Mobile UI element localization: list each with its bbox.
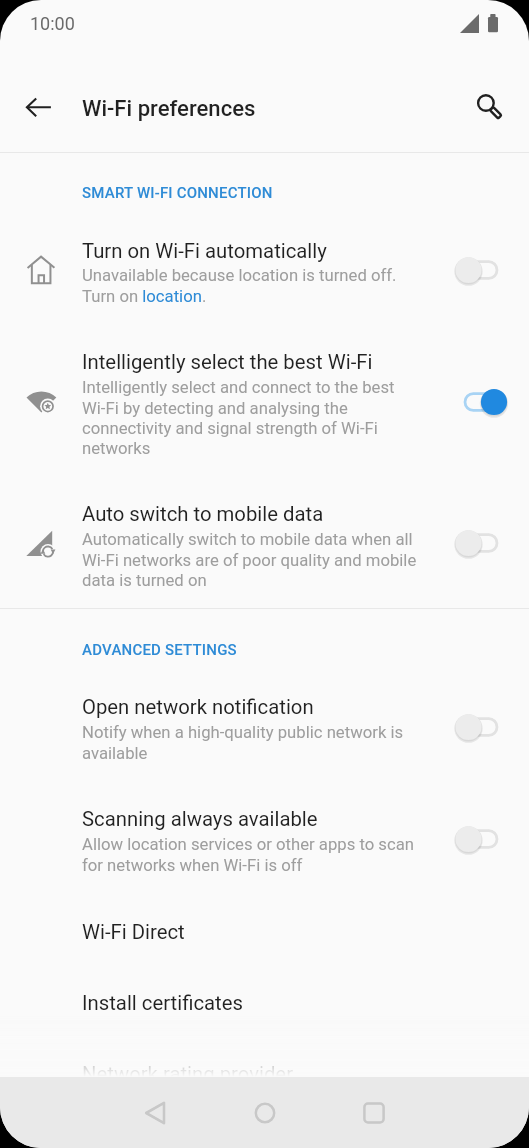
button[interactable]: Toggle off <box>451 513 511 573</box>
button[interactable]: Toggle off <box>451 697 511 757</box>
button[interactable] <box>0 979 529 1027</box>
staticText: Network rating provider <box>82 1062 294 1086</box>
staticText: Intelligently select the best Wi-Fi <box>82 350 373 374</box>
button[interactable]: Back <box>130 1087 181 1138</box>
button[interactable] <box>0 490 529 601</box>
staticText: Open network notification <box>82 695 314 719</box>
staticText: Auto switch to mobile data <box>82 502 324 526</box>
staticText: Wi-Fi preferences <box>82 95 256 121</box>
button[interactable]: Back <box>14 82 64 132</box>
staticText: Turn on Wi-Fi automatically <box>82 239 327 263</box>
button[interactable] <box>0 1050 529 1098</box>
button[interactable] <box>0 908 529 956</box>
button[interactable]: Home <box>239 1087 290 1138</box>
button[interactable] <box>0 795 529 887</box>
button[interactable]: Toggle on <box>451 372 511 432</box>
staticText: Intelligently select and connect to the … <box>82 378 395 458</box>
staticText: Unavailable because location is turned o… <box>82 266 397 306</box>
button[interactable] <box>0 683 529 775</box>
button[interactable]: Toggle off <box>451 809 511 869</box>
button[interactable]: Search <box>461 78 511 128</box>
staticText: Wi-Fi Direct <box>82 920 185 944</box>
staticText: Automatically switch to mobile data when… <box>82 530 417 590</box>
button[interactable]: Toggle off <box>451 240 511 300</box>
staticText: Install certificates <box>82 991 243 1015</box>
button[interactable] <box>0 338 529 469</box>
staticText: Allow location services or other apps to… <box>82 835 414 875</box>
staticText: 10:00 <box>30 13 75 34</box>
staticText: Scanning always available <box>82 807 318 831</box>
staticText: Notify when a high-quality public networ… <box>82 723 404 763</box>
button: ADVANCED SETTINGS <box>82 641 237 659</box>
button[interactable] <box>0 227 529 319</box>
button[interactable]: Recent apps <box>348 1087 399 1138</box>
button: SMART WI-FI CONNECTION <box>82 184 273 202</box>
